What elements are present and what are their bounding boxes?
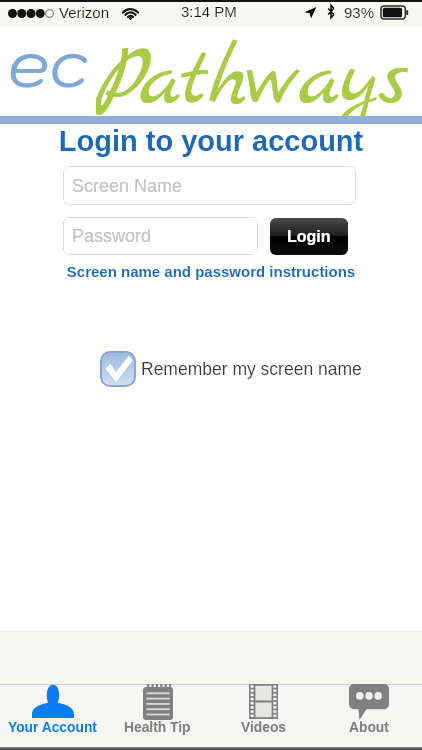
staticText: ec bbox=[8, 19, 89, 105]
button[interactable]: About bbox=[316, 685, 422, 748]
button[interactable]: Password bbox=[63, 217, 258, 255]
button[interactable]: Health Tip bbox=[105, 685, 210, 748]
staticText: Health Tip bbox=[124, 720, 191, 735]
button[interactable]: Remember my screen name bbox=[100, 351, 362, 387]
staticText: Pathways bbox=[96, 28, 408, 125]
button[interactable]: Your Account bbox=[0, 685, 105, 748]
staticText: Login to your account bbox=[0, 125, 422, 157]
button[interactable]: Screen name and password instructions bbox=[0, 263, 422, 280]
button[interactable]: Login bbox=[270, 218, 348, 255]
staticText: Screen Name bbox=[72, 176, 183, 196]
staticText: Videos bbox=[241, 720, 286, 735]
staticText: Remember my screen name bbox=[141, 359, 362, 379]
staticText: 3:14 PM bbox=[181, 3, 237, 20]
button[interactable]: Videos bbox=[210, 685, 316, 748]
staticText: Your Account bbox=[8, 720, 97, 735]
button[interactable]: Screen Name bbox=[63, 166, 356, 205]
staticText: Verizon bbox=[59, 4, 110, 21]
staticText: 93% bbox=[344, 4, 375, 21]
staticText: About bbox=[349, 720, 389, 735]
staticText: Login bbox=[287, 228, 331, 246]
staticText: Password bbox=[72, 226, 152, 246]
